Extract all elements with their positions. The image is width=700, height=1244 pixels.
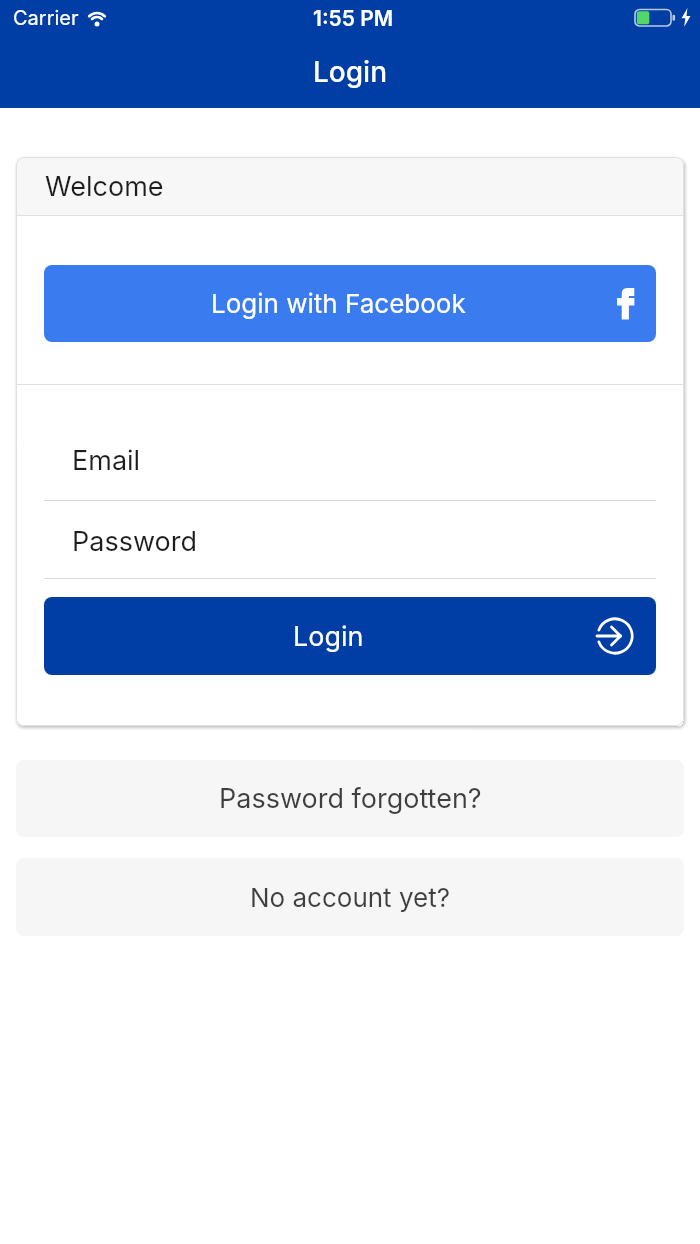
staticText: Login [313, 55, 387, 89]
staticText: Carrier [13, 6, 79, 30]
staticText: 1:55 PM [313, 6, 394, 31]
button[interactable]: No account yet? [16, 858, 684, 936]
staticText: Email [72, 444, 141, 477]
staticText: Login with Facebook [211, 288, 466, 319]
button[interactable]: Login with Facebook [44, 265, 656, 342]
staticText: Welcome [45, 170, 164, 203]
button[interactable]: Login [44, 597, 656, 675]
button[interactable]: Password forgotten? [16, 760, 684, 837]
staticText: Password forgotten? [219, 782, 482, 815]
staticText: Password [72, 525, 197, 558]
staticText: No account yet? [250, 882, 451, 913]
staticText: Login [293, 620, 364, 653]
